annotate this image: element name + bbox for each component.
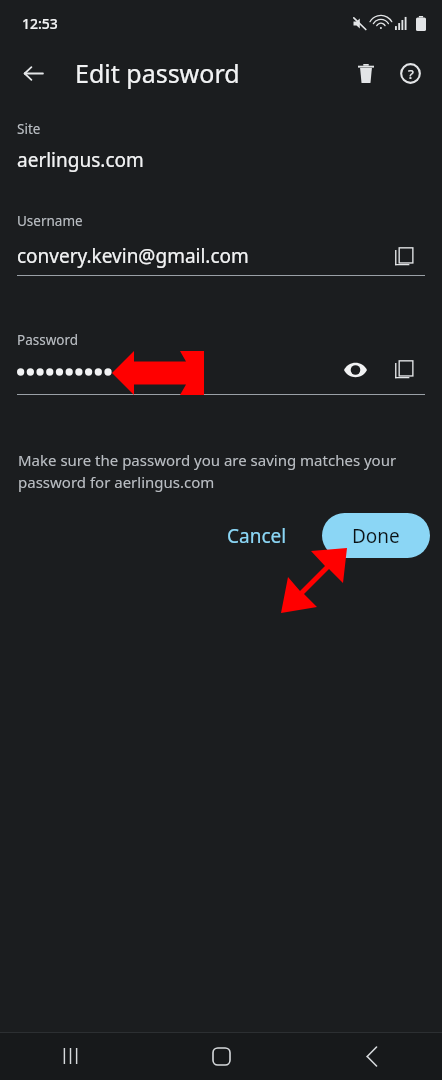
staticText: Password	[17, 331, 79, 349]
button[interactable]: Done	[322, 513, 430, 558]
staticText: Done	[352, 523, 400, 549]
staticText: Cancel	[227, 523, 287, 549]
staticText: Make sure the password you are saving ma…	[18, 450, 398, 493]
button[interactable]: Recent apps	[44, 1032, 96, 1080]
staticText: aerlingus.com	[17, 147, 144, 173]
button[interactable]: Show password	[333, 348, 377, 392]
button[interactable]: Delete password	[344, 51, 388, 95]
staticText: Site	[17, 120, 41, 138]
staticText: ?	[408, 65, 414, 83]
button[interactable]: Cancel	[213, 513, 301, 558]
staticText: 12:53	[22, 14, 58, 33]
button[interactable]: Home	[195, 1032, 247, 1080]
button[interactable]: Copy password	[382, 348, 426, 392]
staticText: Edit password	[75, 56, 240, 90]
button[interactable]: Copy username	[382, 235, 426, 279]
button[interactable]: Back	[12, 52, 54, 94]
staticText: Username	[17, 212, 83, 230]
button[interactable]: Help	[388, 51, 432, 95]
button[interactable]: Back	[346, 1032, 398, 1080]
staticText: convery.kevin@gmail.com	[17, 243, 249, 269]
